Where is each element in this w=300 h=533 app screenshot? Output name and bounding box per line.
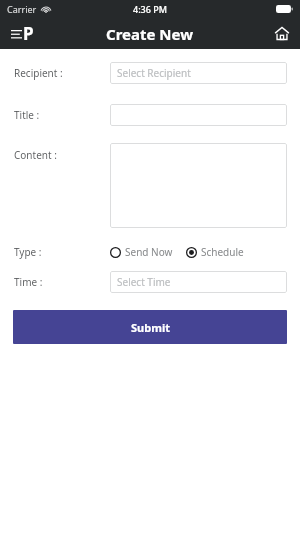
staticText: Carrier: [7, 3, 37, 15]
button[interactable]: Select Recipient: [110, 62, 287, 84]
staticText: Select Time: [117, 275, 171, 289]
button[interactable]: Submit: [13, 310, 287, 344]
staticText: Recipient :: [14, 66, 63, 80]
button[interactable]: [110, 104, 287, 126]
button[interactable]: Schedule: [186, 244, 244, 260]
button[interactable]: Select Time: [110, 271, 287, 293]
staticText: 4:36 PM: [133, 3, 167, 15]
staticText: Title :: [14, 108, 40, 122]
staticText: Submit: [131, 320, 170, 335]
button[interactable]: Home: [264, 21, 300, 46]
button[interactable]: Send Now: [110, 244, 173, 260]
staticText: Time :: [14, 275, 43, 289]
staticText: Content :: [14, 148, 57, 162]
staticText: Schedule: [201, 245, 244, 259]
button[interactable]: Open navigation menu: [0, 18, 42, 49]
staticText: P: [23, 22, 34, 45]
staticText: Type :: [14, 245, 42, 259]
staticText: Send Now: [125, 245, 173, 259]
staticText: Select Recipient: [117, 66, 191, 80]
staticText: Create New: [106, 24, 194, 44]
button[interactable]: [110, 143, 287, 228]
